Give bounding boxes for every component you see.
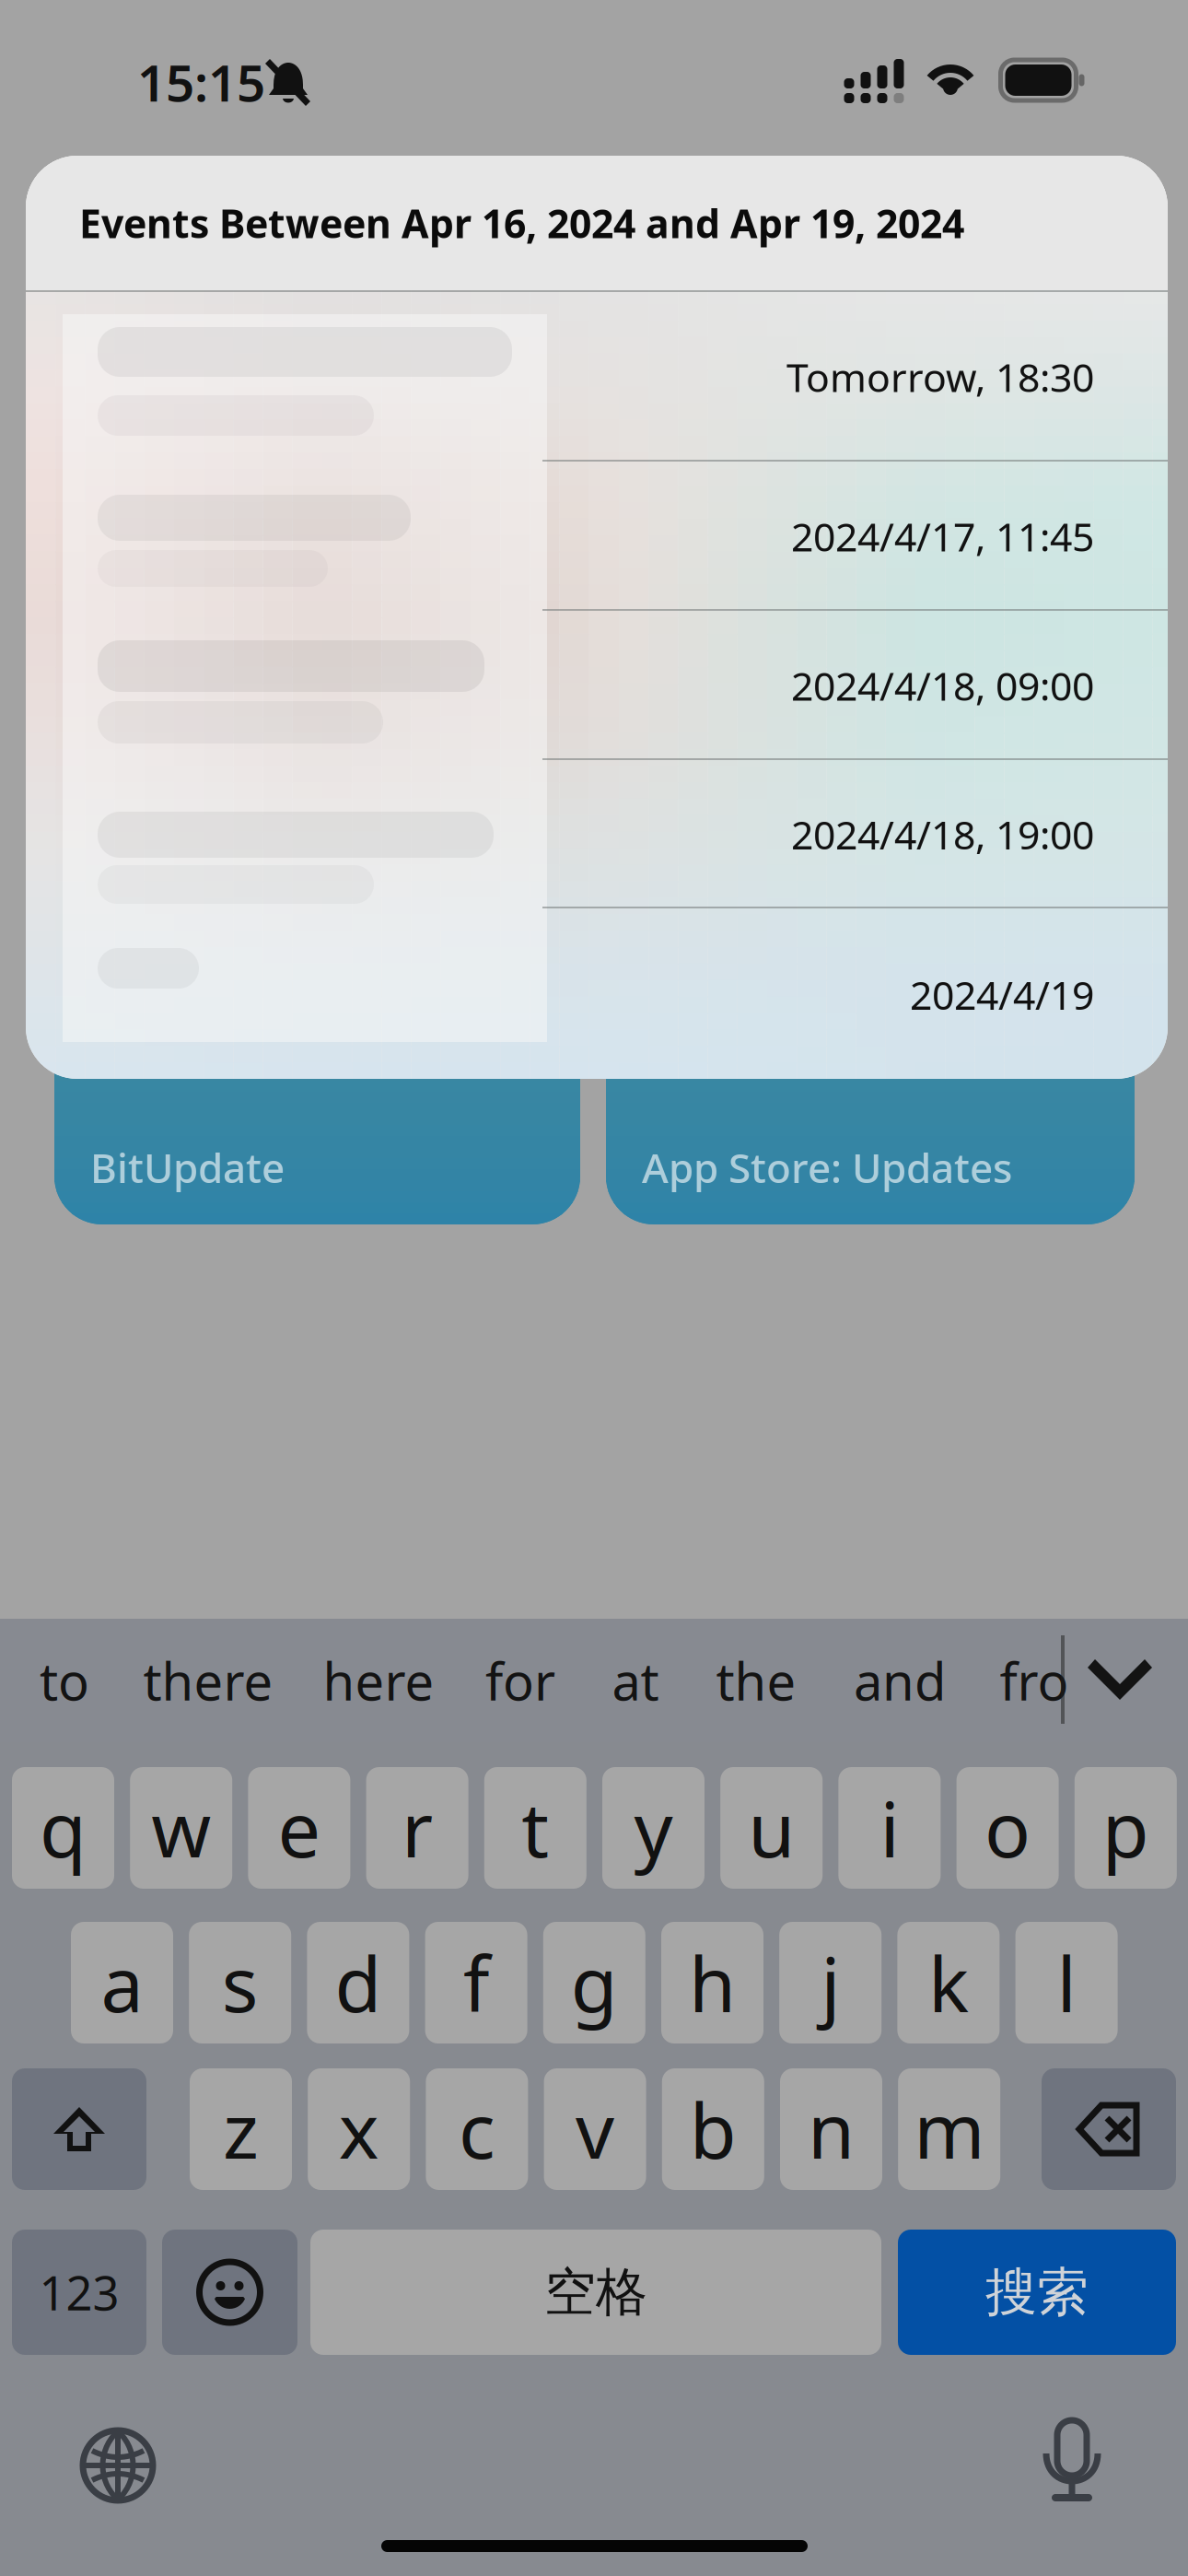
button[interactable]: h — [661, 1922, 763, 2043]
staticText: y — [634, 1777, 673, 1878]
button[interactable]: 2024/4/19 — [26, 908, 1168, 1081]
staticText: x — [339, 2079, 379, 2180]
button[interactable]: y — [602, 1767, 705, 1889]
staticText: o — [985, 1777, 1031, 1878]
button[interactable]: App Store: Updates — [606, 981, 1135, 1224]
staticText: to — [40, 1646, 89, 1715]
staticText: z — [223, 2079, 259, 2180]
staticText: t — [522, 1777, 549, 1878]
button[interactable]: for — [451, 1619, 589, 1742]
button[interactable]: u — [720, 1767, 823, 1889]
staticText: BitUpdate — [90, 1140, 285, 1194]
button[interactable]: x — [308, 2068, 410, 2190]
button[interactable]: t — [484, 1767, 586, 1889]
button[interactable]: 空格 — [310, 2230, 881, 2355]
staticText: h — [689, 1932, 736, 2033]
staticText: n — [808, 2079, 855, 2180]
button[interactable]: j — [779, 1922, 882, 2043]
button[interactable]: the — [687, 1619, 825, 1742]
button[interactable]: fro — [965, 1619, 1103, 1742]
staticText: and — [854, 1646, 946, 1715]
staticText: Tomorrow, 18:30 — [786, 351, 1094, 403]
staticText: q — [40, 1777, 87, 1878]
staticText: j — [821, 1932, 840, 2033]
staticText: b — [690, 2079, 737, 2180]
button[interactable]: 搜索 — [898, 2230, 1176, 2355]
staticText: k — [928, 1932, 969, 2033]
staticText: for — [485, 1646, 555, 1715]
button[interactable]: d — [307, 1922, 409, 2043]
button[interactable]: v — [544, 2068, 646, 2190]
button[interactable]: g — [543, 1922, 645, 2043]
staticText: 123 — [39, 2261, 119, 2323]
staticText: Events Between Apr 16, 2024 and Apr 19, … — [79, 197, 964, 249]
button[interactable]: Emoji — [162, 2230, 297, 2355]
button[interactable]: 123 — [12, 2230, 146, 2355]
staticText: 搜索 — [985, 2261, 1089, 2324]
button[interactable]: q — [12, 1767, 114, 1889]
staticText: m — [914, 2079, 985, 2180]
button[interactable]: f — [425, 1922, 527, 2043]
staticText: f — [463, 1932, 489, 2033]
staticText: 2024/4/19 — [910, 968, 1094, 1021]
button[interactable]: e — [248, 1767, 350, 1889]
button[interactable]: 2024/4/18, 09:00 — [26, 611, 1168, 760]
button[interactable]: here — [309, 1619, 448, 1742]
button[interactable]: BitUpdate — [54, 981, 580, 1224]
button[interactable]: p — [1075, 1767, 1177, 1889]
staticText: at — [612, 1646, 659, 1715]
staticText: 空格 — [544, 2261, 647, 2324]
button[interactable]: to — [0, 1619, 134, 1742]
staticText: p — [1102, 1777, 1149, 1878]
button[interactable]: k — [897, 1922, 1000, 2043]
staticText: l — [1057, 1932, 1076, 2033]
button[interactable]: r — [366, 1767, 468, 1889]
staticText: 15:15 — [137, 49, 265, 115]
button[interactable]: m — [898, 2068, 1000, 2190]
button[interactable]: c — [426, 2068, 528, 2190]
button[interactable]: Tomorrow, 18:30 — [26, 292, 1168, 462]
staticText: w — [151, 1777, 211, 1878]
button[interactable]: s — [189, 1922, 291, 2043]
button[interactable]: there — [139, 1619, 277, 1742]
staticText: r — [402, 1777, 433, 1878]
button[interactable]: z — [190, 2068, 292, 2190]
button[interactable]: l — [1015, 1922, 1118, 2043]
button[interactable]: Dictation — [1042, 2418, 1102, 2514]
staticText: 2024/4/18, 19:00 — [791, 808, 1094, 860]
button[interactable]: Switch keyboard — [81, 2429, 155, 2502]
button[interactable]: and — [831, 1619, 969, 1742]
button[interactable]: i — [838, 1767, 941, 1889]
staticText: c — [459, 2079, 495, 2180]
staticText: s — [222, 1932, 259, 2033]
button[interactable]: o — [956, 1767, 1059, 1889]
staticText: i — [880, 1777, 899, 1878]
staticText: the — [716, 1646, 796, 1715]
button[interactable]: Delete — [1042, 2068, 1176, 2190]
button[interactable]: 2024/4/18, 19:00 — [26, 760, 1168, 908]
staticText: e — [278, 1777, 321, 1878]
staticText: fro — [1000, 1646, 1069, 1715]
staticText: there — [143, 1646, 273, 1715]
staticText: a — [101, 1932, 143, 2033]
staticText: 2024/4/18, 09:00 — [791, 659, 1094, 712]
staticText: here — [323, 1646, 434, 1715]
staticText: App Store: Updates — [642, 1140, 1012, 1194]
staticText: g — [571, 1932, 618, 2033]
button[interactable]: Hide predictions — [1071, 1619, 1172, 1742]
staticText: u — [748, 1777, 795, 1878]
staticText: d — [335, 1932, 382, 2033]
button[interactable]: 2024/4/17, 11:45 — [26, 462, 1168, 611]
button[interactable]: at — [566, 1619, 705, 1742]
button[interactable]: n — [780, 2068, 882, 2190]
staticText: 2024/4/17, 11:45 — [791, 510, 1094, 562]
button[interactable]: b — [662, 2068, 764, 2190]
button[interactable]: a — [71, 1922, 173, 2043]
staticText: v — [576, 2079, 614, 2180]
button[interactable]: Shift — [12, 2068, 146, 2190]
button[interactable]: w — [130, 1767, 232, 1889]
